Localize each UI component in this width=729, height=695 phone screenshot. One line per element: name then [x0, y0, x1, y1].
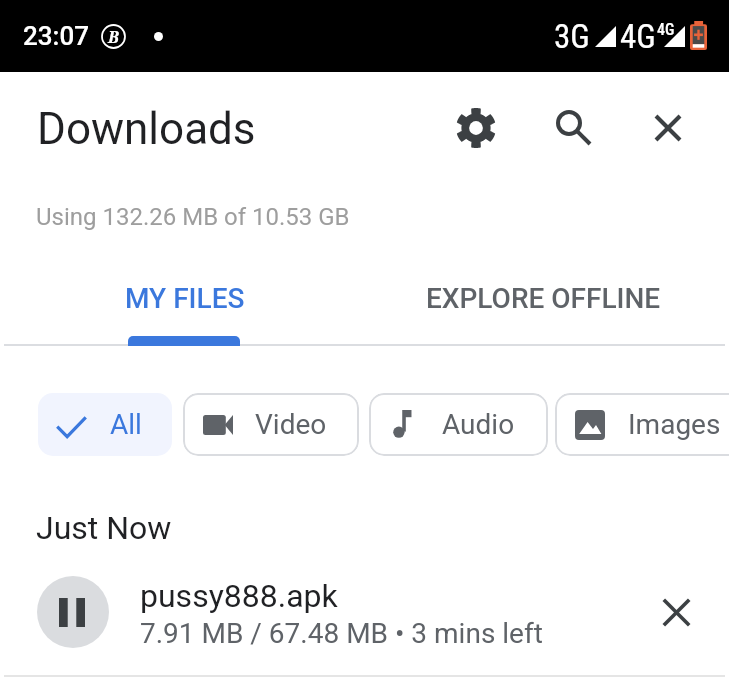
staticText: 4G: [657, 20, 675, 39]
staticText: EXPLORE OFFLINE: [426, 282, 661, 315]
staticText: All: [110, 408, 142, 441]
staticText: Images: [628, 408, 721, 441]
staticText: Downloads: [37, 103, 256, 155]
button[interactable]: Settings: [447, 99, 505, 157]
button[interactable]: MY FILES: [3, 258, 367, 338]
staticText: B: [108, 26, 119, 48]
staticText: pussy888.apk: [140, 577, 338, 615]
staticText: Audio: [442, 408, 515, 441]
staticText: 4G: [620, 17, 656, 56]
button[interactable]: Pause download: [37, 576, 109, 648]
staticText: Using 132.26 MB of 10.53 GB: [36, 203, 350, 231]
button[interactable]: Cancel download: [644, 580, 708, 644]
staticText: Just Now: [36, 509, 172, 547]
button[interactable]: Images: [555, 393, 729, 456]
button[interactable]: Search: [545, 99, 603, 157]
button[interactable]: Audio: [369, 393, 548, 456]
staticText: 23:07: [23, 21, 89, 51]
button[interactable]: Video: [183, 393, 359, 456]
button[interactable]: EXPLORE OFFLINE: [361, 258, 726, 338]
staticText: Video: [255, 408, 327, 441]
staticText: 3G: [554, 17, 590, 56]
button[interactable]: Close: [639, 99, 697, 157]
staticText: 7.91 MB / 67.48 MB • 3 mins left: [140, 617, 543, 650]
button[interactable]: All: [38, 393, 172, 456]
staticText: MY FILES: [125, 282, 245, 315]
